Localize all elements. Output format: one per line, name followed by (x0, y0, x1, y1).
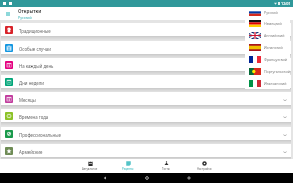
staticText: Португальский (264, 69, 290, 74)
staticText: Особые случаи (19, 46, 51, 52)
staticText: Рецепты (122, 167, 134, 171)
button[interactable]: Recent apps (168, 173, 210, 183)
button[interactable]: Home (126, 173, 168, 183)
button[interactable]: Времена года (1, 109, 291, 122)
staticText: Армейские (19, 149, 43, 155)
staticText: Времена года (19, 114, 49, 120)
button[interactable]: Португальский (245, 65, 290, 77)
button[interactable]: Настройки (185, 159, 223, 173)
button[interactable]: Армейские (1, 144, 291, 157)
button[interactable]: Особые случаи (1, 41, 291, 54)
staticText: На каждый день (19, 63, 54, 69)
staticText: Тосты (162, 167, 170, 171)
button[interactable]: Традиционные (1, 23, 291, 36)
staticText: Открытки (18, 8, 42, 14)
staticText: Русский (264, 10, 278, 15)
button[interactable]: Испанский (245, 41, 290, 53)
staticText: Испанский (264, 45, 283, 50)
button[interactable]: Немецкий (245, 18, 290, 29)
staticText: Итальянский (264, 81, 287, 86)
button[interactable]: Французский (245, 53, 290, 65)
staticText: Русский (18, 15, 32, 20)
button[interactable]: Профессиональные (1, 127, 291, 140)
staticText: Немецкий (264, 21, 282, 26)
staticText: Месяцы (19, 97, 36, 103)
staticText: Традиционные (19, 28, 51, 34)
button[interactable]: Back (84, 173, 126, 183)
staticText: Английский (264, 33, 285, 38)
staticText: Актуальное (82, 167, 98, 171)
staticText: Настройки (197, 167, 212, 171)
button[interactable]: Рецепты (109, 159, 147, 173)
button[interactable]: Месяцы (1, 92, 291, 105)
button[interactable]: Итальянский (245, 77, 290, 89)
button[interactable]: На каждый день (1, 58, 291, 71)
staticText: Профессиональные (19, 132, 61, 138)
button[interactable]: Дни недели (1, 75, 291, 88)
staticText: 12:01 (281, 1, 291, 6)
button[interactable]: Актуальное (71, 159, 109, 173)
staticText: Французский (264, 57, 287, 62)
staticText: Дни недели (19, 80, 44, 86)
button[interactable]: Тосты (147, 159, 185, 173)
button[interactable]: Русский (245, 7, 290, 18)
button[interactable]: Английский (245, 29, 290, 41)
